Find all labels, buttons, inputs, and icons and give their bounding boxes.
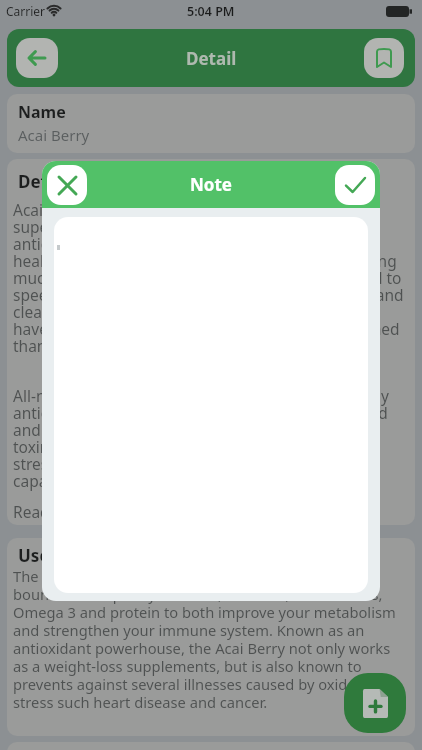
staticText: Name [18, 101, 66, 123]
button[interactable]: Read More [13, 501, 92, 522]
staticText: Note [190, 173, 232, 196]
button[interactable] [344, 673, 406, 733]
staticText: Details [18, 170, 77, 193]
staticText: Carrier [6, 3, 46, 19]
staticText: All-natural Acai Berry supplements act u… [13, 385, 389, 491]
staticText: 5:04 PM [187, 3, 235, 20]
staticText: Acai berries are widely touted as a so-c… [13, 199, 404, 356]
button[interactable] [335, 165, 375, 205]
button[interactable] [364, 38, 404, 78]
button[interactable] [16, 38, 58, 78]
staticText: Uses [18, 544, 59, 567]
staticText: The famous Acai Berry! This delicious be… [13, 566, 396, 712]
button[interactable] [47, 165, 87, 205]
staticText: Acai Berry [18, 125, 90, 145]
staticText: Detail [186, 47, 237, 70]
